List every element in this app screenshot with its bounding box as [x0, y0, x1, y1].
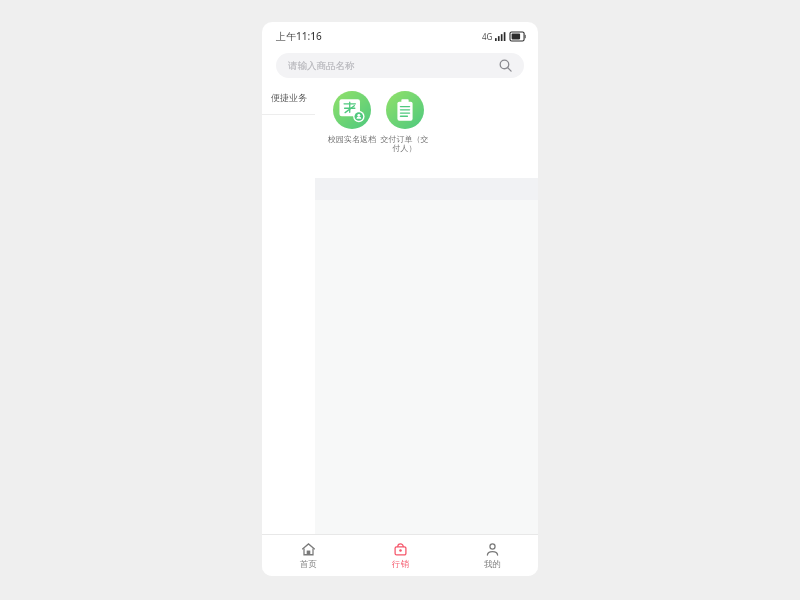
button[interactable]: 首页	[262, 535, 354, 576]
staticText: 交付订单（交付人）	[378, 134, 431, 154]
button[interactable]: 便捷业务	[262, 80, 315, 114]
staticText: 4G	[482, 31, 493, 42]
button[interactable]: 行销	[354, 535, 446, 576]
staticText: 校园实名返档	[328, 134, 376, 144]
button[interactable]: 我的	[446, 535, 538, 576]
staticText: 请输入商品名称	[288, 60, 355, 72]
staticText: 我的	[484, 559, 501, 570]
staticText: 上午11:16	[276, 29, 322, 43]
staticText: 首页	[300, 559, 317, 570]
staticText: 便捷业务	[271, 92, 307, 103]
button[interactable]: 校园实名返档	[325, 89, 378, 144]
button[interactable]: 请输入商品名称	[276, 53, 524, 78]
button[interactable]: 交付订单（交付人）	[378, 89, 431, 154]
staticText: 行销	[392, 559, 409, 570]
